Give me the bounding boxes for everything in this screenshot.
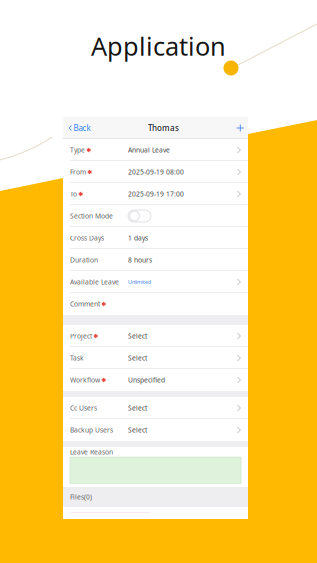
- staticText: Cross Days: [70, 234, 104, 242]
- staticText: Files(0): [70, 493, 92, 501]
- staticText: Available Leave: [70, 278, 119, 286]
- button[interactable]: To: [63, 183, 248, 205]
- staticText: Select: [128, 426, 147, 434]
- staticText: Section Mode: [70, 212, 113, 220]
- button[interactable]: Cross Days: [63, 227, 248, 249]
- staticText: Cc Users: [70, 404, 97, 412]
- staticText: 8 hours: [128, 256, 152, 264]
- button[interactable]: Backup Users: [63, 419, 248, 441]
- button[interactable]: From: [63, 161, 248, 183]
- staticText: Select: [128, 332, 147, 340]
- button[interactable]: Section Mode toggle: [128, 210, 151, 222]
- button[interactable]: Workflow: [63, 369, 248, 391]
- staticText: Application: [91, 29, 226, 63]
- staticText: To: [70, 190, 77, 198]
- staticText: Annual Leave: [128, 146, 170, 154]
- staticText: Task: [70, 354, 84, 362]
- staticText: Type: [70, 146, 85, 154]
- button[interactable]: Duration: [63, 249, 248, 271]
- staticText: Select: [128, 404, 147, 412]
- button[interactable]: Task: [63, 347, 248, 369]
- button[interactable]: Available Leave: [63, 271, 248, 293]
- button[interactable]: Add: [232, 117, 248, 139]
- button[interactable]: Type: [63, 139, 248, 161]
- staticText: Thomas: [148, 123, 179, 133]
- staticText: Backup Users: [70, 426, 113, 434]
- staticText: 2025-09-19 17:00: [128, 190, 184, 198]
- staticText: Select: [128, 354, 147, 362]
- staticText: Leave Reason: [70, 448, 113, 456]
- button[interactable]: Comment: [63, 293, 248, 315]
- button[interactable]: Back: [63, 117, 95, 139]
- staticText: 1 days: [128, 234, 148, 242]
- staticText: Workflow: [70, 376, 100, 384]
- staticText: Project: [70, 332, 92, 340]
- staticText: From: [70, 168, 86, 176]
- staticText: Duration: [70, 256, 98, 264]
- button[interactable]: Cc Users: [63, 397, 248, 419]
- button[interactable]: Files(0): [63, 487, 248, 507]
- staticText: Back: [74, 123, 91, 133]
- staticText: 2025-09-19 08:00: [128, 168, 184, 176]
- staticText: Unlimited: [128, 278, 151, 286]
- button[interactable]: Project: [63, 325, 248, 347]
- staticText: Comment: [70, 300, 100, 308]
- staticText: Unspecified: [128, 376, 165, 384]
